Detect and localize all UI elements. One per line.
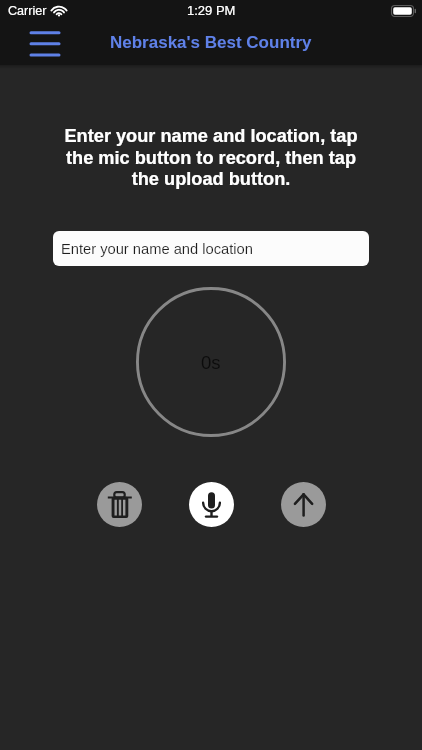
button[interactable]: Menu [23,24,67,63]
staticText: 0s [201,352,221,373]
button[interactable]: Delete recording [97,482,142,527]
staticText: 1:29 PM [187,3,236,18]
staticText: Carrier [8,4,47,18]
staticText: Nebraska's Best Country [110,33,312,52]
staticText: Enter your name and location [61,241,253,257]
staticText: Enter your name and location, tap the mi… [61,126,361,189]
button[interactable]: Record [189,482,234,527]
button[interactable]: Upload [281,482,326,527]
button[interactable]: Enter your name and location [53,231,369,266]
